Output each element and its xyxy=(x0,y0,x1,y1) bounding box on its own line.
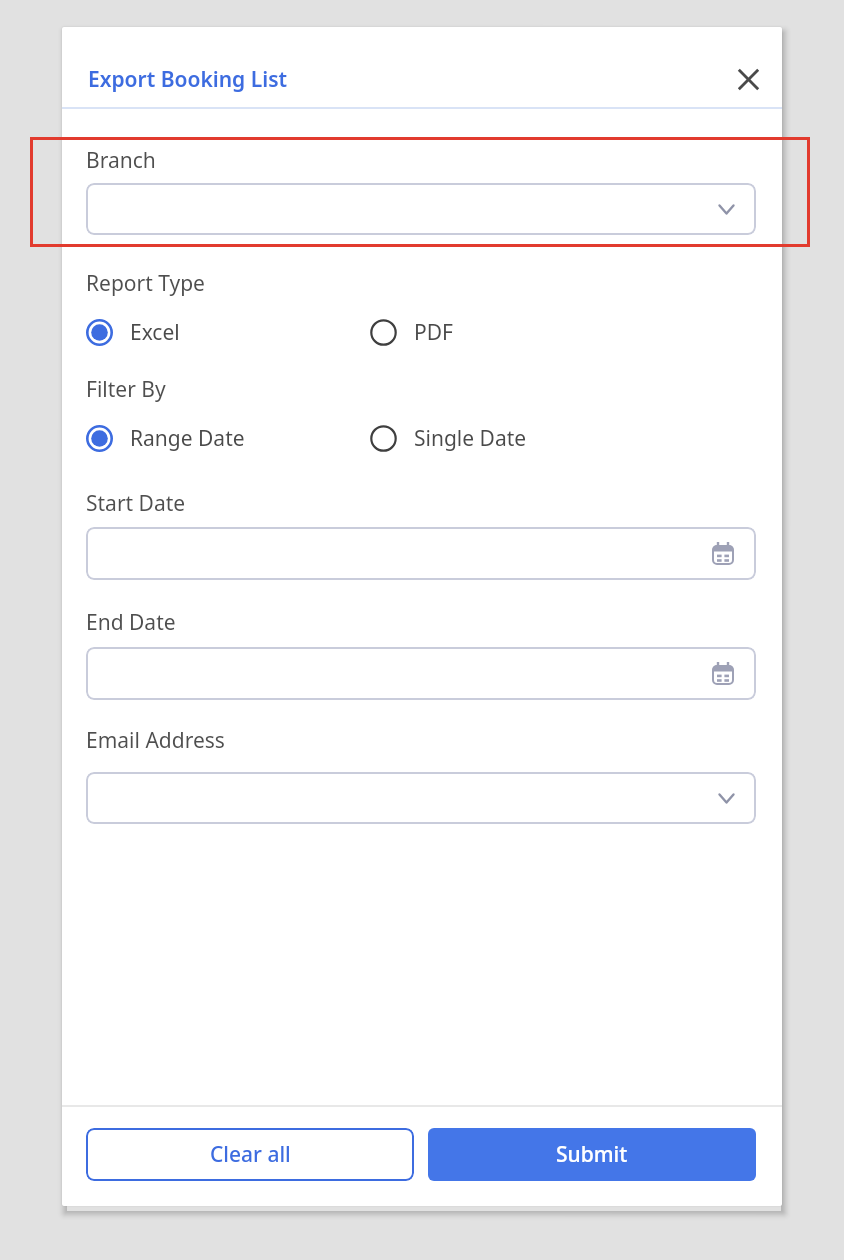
button[interactable]: Single Date xyxy=(370,424,527,452)
staticText: Email Address xyxy=(86,726,225,754)
staticText: Clear all xyxy=(210,1140,291,1169)
button[interactable] xyxy=(86,772,756,824)
button[interactable] xyxy=(728,59,768,99)
button[interactable]: Excel xyxy=(86,318,180,346)
button[interactable] xyxy=(86,183,756,235)
staticText: Filter By xyxy=(86,375,166,403)
staticText: Report Type xyxy=(86,269,205,297)
staticText: Excel xyxy=(130,318,180,346)
button[interactable]: Range Date xyxy=(86,424,245,452)
button[interactable] xyxy=(86,647,756,700)
staticText: PDF xyxy=(414,318,453,346)
button[interactable]: PDF xyxy=(370,318,453,346)
staticText: Start Date xyxy=(86,489,186,517)
button[interactable]: Submit xyxy=(428,1128,756,1181)
staticText: Submit xyxy=(556,1140,628,1169)
staticText: Range Date xyxy=(130,424,245,452)
staticText: Export Booking List xyxy=(88,65,288,93)
button[interactable]: Clear all xyxy=(86,1128,414,1181)
staticText: Branch xyxy=(86,146,156,174)
staticText: End Date xyxy=(86,608,176,636)
button[interactable] xyxy=(86,527,756,580)
staticText: Single Date xyxy=(414,424,527,452)
